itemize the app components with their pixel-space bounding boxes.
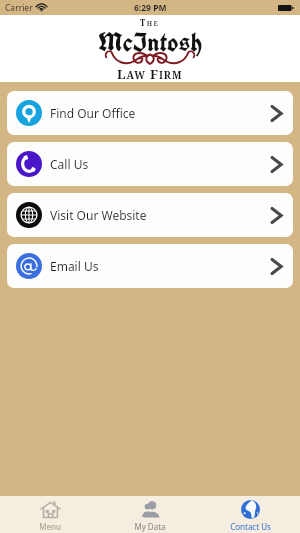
staticText: Call Us (50, 156, 89, 172)
button[interactable]: Contact Us (200, 496, 300, 533)
button[interactable]: My Data (100, 496, 200, 533)
button[interactable]: Call Us (7, 142, 293, 186)
button[interactable]: Visit Our Website (7, 193, 293, 237)
staticText: Email Us (50, 258, 99, 274)
staticText: Visit Our Website (50, 207, 147, 223)
button[interactable]: Menu (0, 496, 100, 533)
button[interactable]: Find Our Office (7, 91, 293, 135)
staticText: Contact Us (230, 521, 271, 532)
staticText: THE (140, 17, 160, 28)
staticText: Find Our Office (50, 105, 136, 121)
staticText: My Data (134, 521, 166, 532)
button[interactable]: Email Us (7, 244, 293, 288)
staticText: McIntosh (98, 24, 203, 59)
staticText: LAW FIRM (117, 65, 183, 83)
staticText: 6:29 PM (134, 2, 167, 14)
staticText: Carrier (5, 2, 33, 14)
staticText: Menu (39, 521, 61, 532)
